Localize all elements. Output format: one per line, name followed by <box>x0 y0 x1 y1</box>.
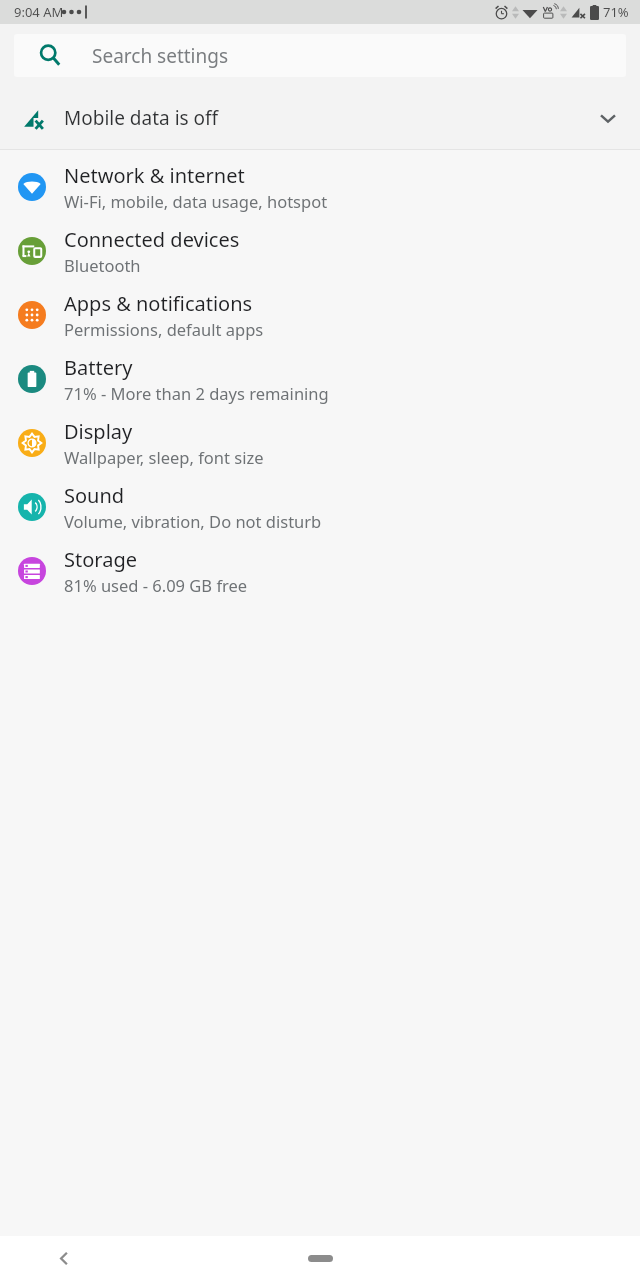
button[interactable]: Search settings <box>14 34 626 77</box>
staticText: Sound <box>64 482 125 509</box>
staticText: 81% used - 6.09 GB free <box>64 574 248 596</box>
button[interactable]: Expand <box>586 96 630 140</box>
button[interactable]: Storage <box>0 539 640 603</box>
staticText: Wallpaper, sleep, font size <box>64 446 264 468</box>
staticText: Display <box>64 418 133 445</box>
button[interactable]: Apps & notifications <box>0 283 640 347</box>
staticText: Volume, vibration, Do not disturb <box>64 510 322 532</box>
button[interactable]: Network & internet <box>0 155 640 219</box>
button[interactable]: Sound <box>0 475 640 539</box>
button[interactable]: Battery <box>0 347 640 411</box>
staticText: Apps & notifications <box>64 290 253 317</box>
button[interactable]: Display <box>0 411 640 475</box>
staticText: Permissions, default apps <box>64 318 264 340</box>
staticText: Search settings <box>92 43 229 69</box>
staticText: 71% - More than 2 days remaining <box>64 382 329 404</box>
staticText: Battery <box>64 354 133 381</box>
button[interactable]: Mobile data is off <box>0 86 640 149</box>
button[interactable]: Back <box>44 1238 84 1278</box>
staticText: Network & internet <box>64 162 245 189</box>
button[interactable]: Connected devices <box>0 219 640 283</box>
button[interactable]: Home <box>290 1244 350 1272</box>
staticText: Bluetooth <box>64 254 141 276</box>
staticText: Storage <box>64 546 137 573</box>
staticText: Wi-Fi, mobile, data usage, hotspot <box>64 190 328 212</box>
staticText: 71% <box>603 3 629 21</box>
staticText: Connected devices <box>64 226 240 253</box>
staticText: Mobile data is off <box>64 105 219 131</box>
staticText: 9:04 AM <box>14 3 64 21</box>
